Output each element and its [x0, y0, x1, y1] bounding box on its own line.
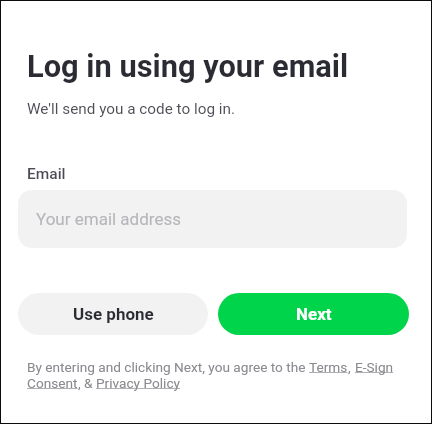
staticText: Your email address: [36, 209, 181, 229]
button[interactable]: E-Sign: [355, 359, 394, 375]
button[interactable]: Use phone: [18, 293, 208, 335]
staticText: We'll send you a code to log in.: [27, 100, 235, 118]
staticText: ,: [348, 359, 355, 375]
button[interactable]: Terms: [309, 359, 348, 375]
staticText: Next: [296, 304, 332, 324]
button[interactable]: Next: [218, 293, 409, 335]
staticText: Log in using your email: [27, 48, 349, 84]
button[interactable]: Your email address: [18, 190, 407, 248]
button[interactable]: Consent: [27, 375, 78, 391]
button[interactable]: Privacy Policy: [96, 375, 180, 391]
staticText: , &: [78, 375, 96, 391]
staticText: Email: [27, 165, 66, 183]
staticText: Use phone: [73, 304, 154, 324]
staticText: By entering and clicking Next, you agree…: [27, 359, 309, 375]
